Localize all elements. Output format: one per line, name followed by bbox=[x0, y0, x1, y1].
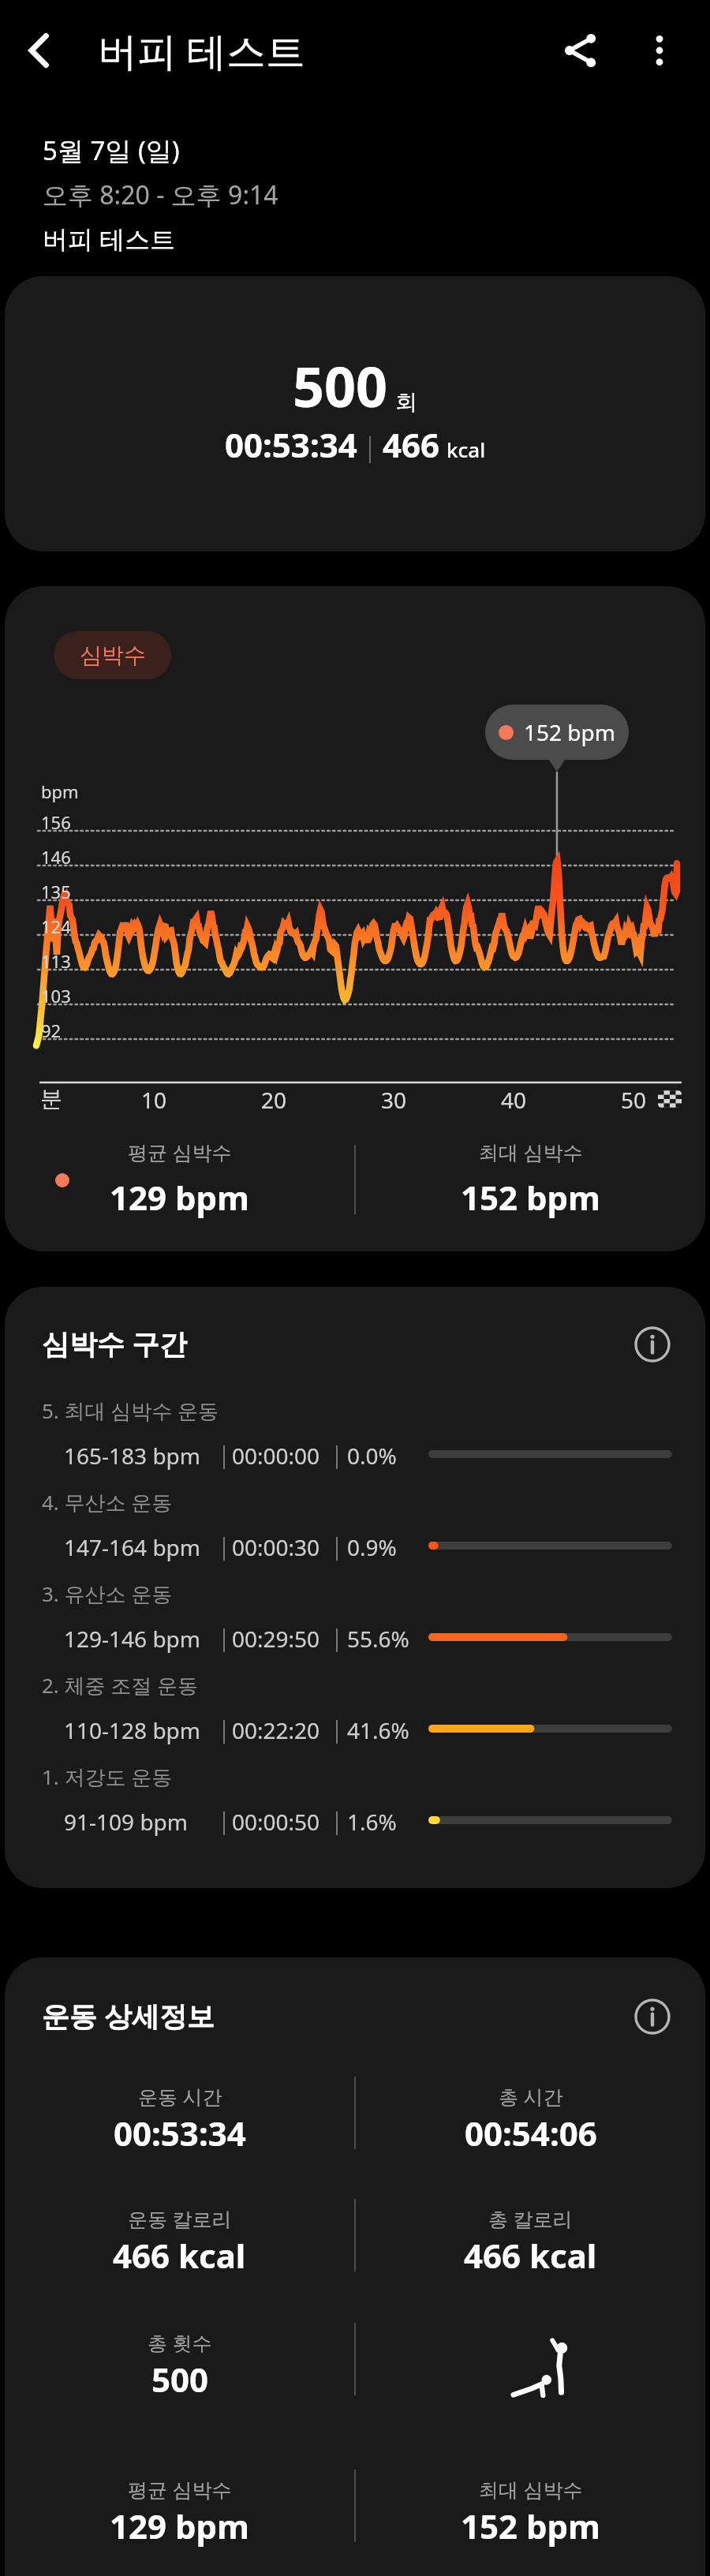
staticText: 466 kcal bbox=[113, 2233, 246, 2278]
staticText: 3. 유산소 운동 bbox=[42, 1580, 173, 1608]
staticText: 10 bbox=[141, 1085, 167, 1115]
staticText: 1.6% bbox=[347, 1807, 397, 1837]
staticText: 5월 7일 (일) bbox=[43, 133, 180, 168]
staticText: 55.6% bbox=[347, 1624, 409, 1654]
staticText: 분 bbox=[40, 1085, 62, 1112]
staticText: 00:54:06 bbox=[465, 2111, 597, 2155]
staticText: 135 bbox=[41, 880, 71, 903]
staticText: 운동 시간 bbox=[138, 2083, 222, 2110]
staticText: 156 bbox=[41, 810, 71, 834]
staticText: 41.6% bbox=[347, 1715, 409, 1745]
staticText: 91-109 bpm bbox=[64, 1807, 188, 1837]
staticText: 0.9% bbox=[347, 1532, 397, 1562]
staticText: 00:53:34 bbox=[225, 422, 357, 467]
staticText: 50 bbox=[621, 1085, 647, 1115]
staticText: 4. 무산소 운동 bbox=[42, 1488, 173, 1516]
staticText: 00:00:30 bbox=[232, 1532, 320, 1562]
button[interactable]: More options bbox=[620, 11, 699, 90]
staticText: 총 칼로리 bbox=[488, 2205, 573, 2232]
staticText: 147-164 bpm bbox=[64, 1532, 201, 1562]
staticText: 466 bbox=[383, 422, 440, 467]
staticText: 466 kcal bbox=[464, 2233, 597, 2278]
staticText: 129-146 bpm bbox=[64, 1624, 201, 1654]
staticText: 0.0% bbox=[347, 1441, 397, 1471]
button[interactable]: 5. 최대 심박수 운동 bbox=[5, 1403, 705, 1491]
staticText: 운동 상세정보 bbox=[42, 1997, 215, 2035]
staticText: 심박수 bbox=[80, 641, 146, 669]
staticText: 146 bbox=[41, 845, 71, 869]
staticText: 버피 테스트 bbox=[98, 24, 305, 77]
staticText: 30 bbox=[381, 1085, 407, 1115]
staticText: 129 bpm bbox=[110, 2503, 250, 2548]
staticText: bpm bbox=[41, 780, 79, 803]
staticText: 2. 체중 조절 운동 bbox=[42, 1671, 199, 1699]
staticText: 500 bbox=[151, 2357, 209, 2402]
staticText: 심박수 구간 bbox=[42, 1325, 188, 1363]
button[interactable]: Share bbox=[541, 11, 620, 90]
staticText: 113 bbox=[41, 949, 71, 973]
staticText: 최대 심박수 bbox=[479, 1138, 583, 1165]
staticText: 152 bpm bbox=[461, 2503, 601, 2548]
button[interactable]: Information bbox=[626, 1991, 678, 2043]
staticText: 평균 심박수 bbox=[128, 2476, 232, 2503]
staticText: 버피 테스트 bbox=[43, 222, 176, 256]
staticText: 5. 최대 심박수 운동 bbox=[42, 1396, 219, 1425]
staticText: 110-128 bpm bbox=[64, 1715, 201, 1745]
staticText: 165-183 bpm bbox=[64, 1441, 201, 1471]
staticText: 00:00:50 bbox=[232, 1807, 320, 1837]
button[interactable]: Back bbox=[0, 11, 79, 90]
staticText: 00:22:20 bbox=[232, 1715, 320, 1745]
staticText: 운동 칼로리 bbox=[128, 2205, 232, 2232]
button[interactable]: 심박수 bbox=[54, 631, 171, 679]
staticText: 00:00:00 bbox=[232, 1441, 320, 1471]
staticText: 103 bbox=[41, 984, 71, 1008]
staticText: 152 bpm bbox=[461, 1175, 601, 1220]
staticText: 평균 심박수 bbox=[128, 1138, 232, 1165]
staticText: 총 횟수 bbox=[148, 2329, 212, 2356]
staticText: 00:29:50 bbox=[232, 1624, 320, 1654]
staticText: kcal bbox=[447, 436, 486, 463]
staticText: 40 bbox=[501, 1085, 527, 1115]
staticText: 회 bbox=[395, 388, 417, 416]
staticText: 500 bbox=[293, 348, 388, 423]
staticText: 오후 8:20 - 오후 9:14 bbox=[43, 178, 278, 212]
staticText: 최대 심박수 bbox=[479, 2476, 583, 2503]
staticText: 총 시간 bbox=[499, 2083, 563, 2110]
button[interactable]: Information bbox=[626, 1318, 678, 1370]
staticText: 1. 저강도 운동 bbox=[42, 1763, 173, 1791]
staticText: 92 bbox=[41, 1019, 62, 1042]
staticText: 00:53:34 bbox=[114, 2111, 246, 2155]
staticText: 20 bbox=[261, 1085, 287, 1115]
staticText: 129 bpm bbox=[110, 1175, 250, 1220]
button[interactable]: 1. 저강도 운동 bbox=[5, 1769, 705, 1857]
staticText: 124 bbox=[41, 914, 71, 938]
button[interactable]: 3. 유산소 운동 bbox=[5, 1586, 705, 1674]
button[interactable]: 2. 체중 조절 운동 bbox=[5, 1677, 705, 1766]
button[interactable]: 4. 무산소 운동 bbox=[5, 1494, 705, 1583]
staticText: 152 bpm bbox=[524, 717, 615, 747]
